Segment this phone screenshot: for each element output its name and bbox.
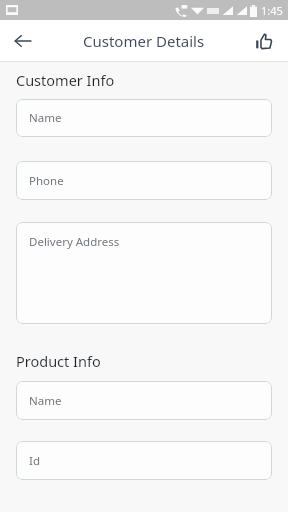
staticText: Id (29, 453, 40, 469)
staticText: 1:45 (261, 3, 283, 18)
staticText: Product Info (16, 351, 101, 371)
staticText: Customer Details (83, 31, 205, 51)
button[interactable]: Name (16, 381, 272, 420)
button[interactable]: Name (16, 99, 272, 137)
staticText: Name (29, 393, 62, 409)
staticText: Customer Info (16, 70, 115, 90)
staticText: Delivery Address (29, 234, 120, 250)
button[interactable]: Like (246, 23, 282, 59)
button[interactable]: Back (5, 23, 41, 59)
button[interactable]: Delivery Address (16, 222, 272, 324)
button[interactable]: Id (16, 441, 272, 480)
staticText: Phone (29, 173, 64, 189)
button[interactable]: Phone (16, 161, 272, 200)
staticText: Name (29, 110, 62, 126)
